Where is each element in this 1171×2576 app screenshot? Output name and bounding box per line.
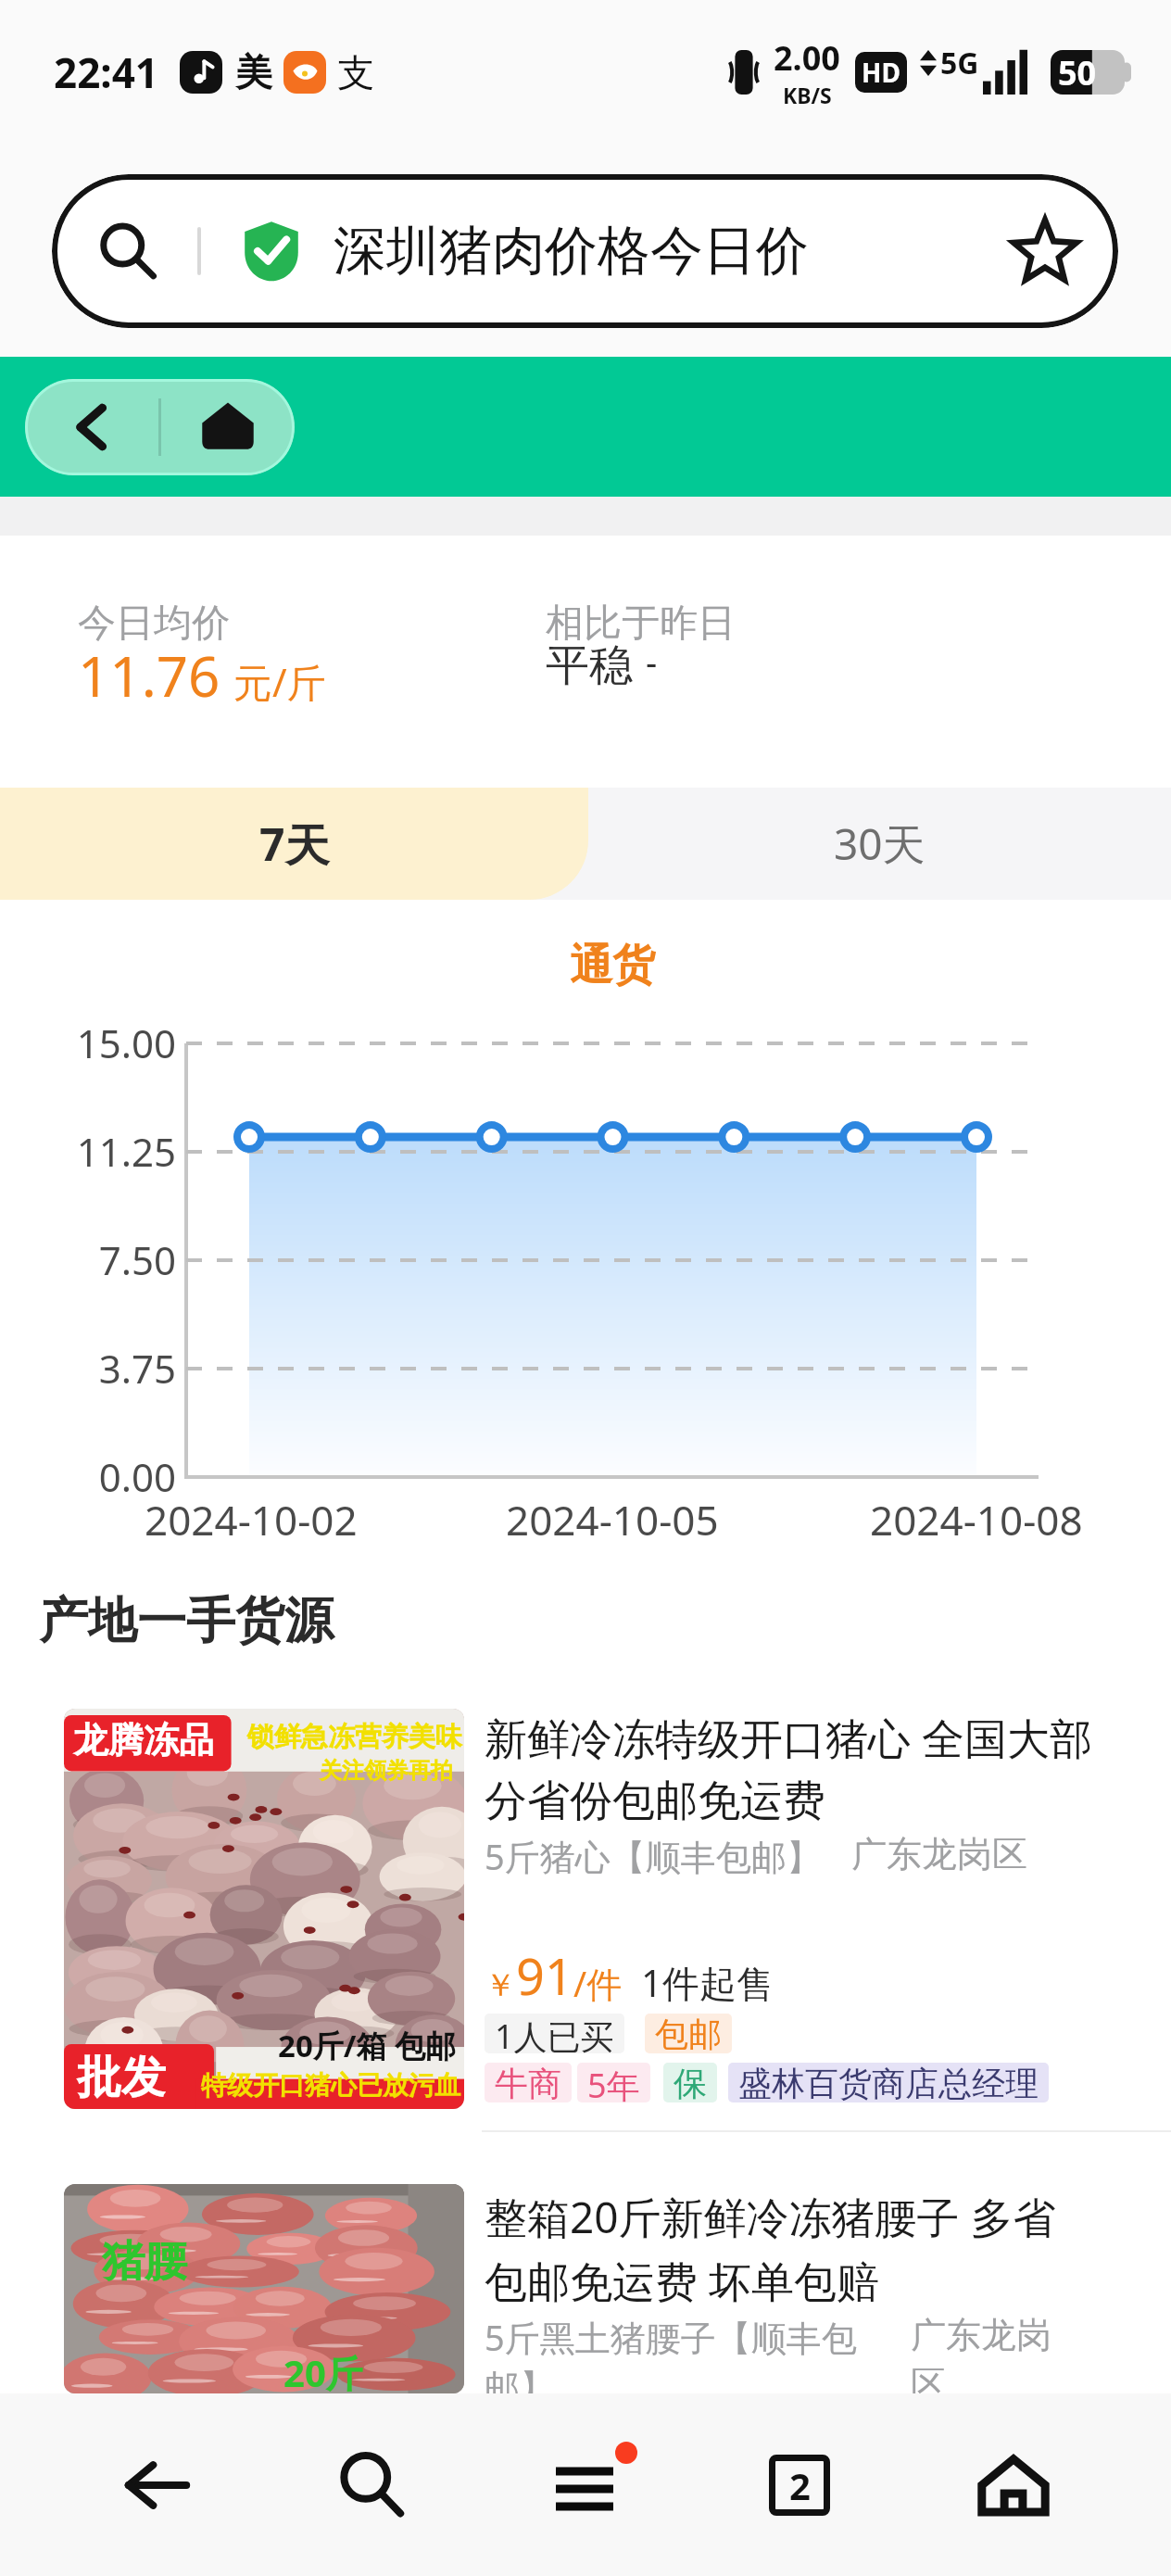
staticText: 5斤猪心【顺丰包邮】 xyxy=(485,1832,822,1880)
staticText: 盛林百货商店总经理 xyxy=(738,2063,1039,2102)
staticText: - xyxy=(646,638,658,686)
button[interactable]: Home xyxy=(161,379,295,475)
staticText: 包邮 xyxy=(655,2014,722,2053)
staticText: 5G xyxy=(940,43,979,83)
button[interactable]: Back xyxy=(51,2393,264,2576)
staticText: 2024-10-08 xyxy=(870,1492,1083,1547)
staticText: KB/S xyxy=(783,81,832,109)
staticText: 11.76 xyxy=(78,638,220,713)
staticText: 平稳 xyxy=(546,638,633,693)
staticText: 5斤黑土猪腰子【顺丰包邮】 xyxy=(485,2313,892,2393)
staticText: 7天 xyxy=(259,814,330,875)
staticText: 22:41 xyxy=(54,44,159,100)
staticText: 牛商 xyxy=(495,2063,561,2102)
staticText: /件 xyxy=(573,1959,623,2007)
button[interactable]: 30天 xyxy=(588,788,1171,900)
button[interactable]: Search xyxy=(52,174,1118,328)
staticText: 关注领券再拍 xyxy=(320,1757,453,1785)
staticText: 2 xyxy=(789,2460,811,2510)
staticText: 深圳猪肉价格今日价 xyxy=(334,218,809,284)
staticText: 91 xyxy=(516,1941,573,2010)
button[interactable]: 龙腾冻品 xyxy=(0,1709,1171,2130)
staticText: 2024-10-02 xyxy=(145,1492,358,1547)
button[interactable]: 猪腰 xyxy=(0,2132,1171,2393)
staticText: 20斤 xyxy=(283,2347,363,2393)
staticText: 0.00 xyxy=(0,1450,176,1503)
staticText: 11.25 xyxy=(0,1125,176,1178)
staticText: 美 xyxy=(235,49,272,95)
staticText: 今日均价 xyxy=(78,600,230,648)
button[interactable]: Menu xyxy=(478,2393,692,2576)
staticText: 通货 xyxy=(570,939,655,992)
button[interactable]: Search xyxy=(264,2393,478,2576)
staticText: 整箱20斤新鲜冷冻猪腰子 多省包邮免运费 坏单包赔 xyxy=(485,2188,1096,2309)
staticText: 广东龙岗区 xyxy=(851,1832,1027,1876)
staticText: 广东龙岗区 xyxy=(911,2313,1064,2393)
button[interactable]: Tabs xyxy=(692,2393,906,2576)
staticText: 元/斤 xyxy=(233,655,326,708)
staticText: ￥ xyxy=(485,1965,516,2005)
staticText: 锁鲜急冻营养美味 xyxy=(247,1720,462,1754)
staticText: 7.50 xyxy=(0,1233,176,1286)
staticText: 保 xyxy=(674,2063,707,2102)
staticText: 猪腰 xyxy=(102,2235,187,2289)
staticText: 新鲜冷冻特级开口猪心 全国大部分省份包邮免运费 xyxy=(485,1709,1134,1828)
staticText: 15.00 xyxy=(0,1017,176,1069)
staticText: 3.75 xyxy=(0,1342,176,1395)
staticText: 支 xyxy=(337,49,374,95)
other: Search xyxy=(98,221,157,281)
button[interactable]: 7天 xyxy=(0,788,588,900)
staticText: 50 xyxy=(1058,50,1097,95)
staticText: 相比于昨日 xyxy=(546,600,736,648)
staticText: 1人已买 xyxy=(495,2014,614,2053)
staticText: 30天 xyxy=(834,814,925,873)
staticText: 龙腾冻品 xyxy=(73,1718,214,1762)
staticText: 特级开口猪心已放污血 xyxy=(201,2069,460,2102)
staticText: 1件起售 xyxy=(641,1957,774,2008)
staticText: 批发 xyxy=(77,2050,166,2105)
staticText: HD xyxy=(862,55,900,90)
button[interactable]: Home xyxy=(906,2393,1120,2576)
other: Favorite xyxy=(1011,217,1079,285)
button[interactable]: Back xyxy=(25,379,158,475)
staticText: 5年 xyxy=(587,2063,640,2102)
staticText: 20斤/箱 包邮 xyxy=(278,2025,457,2066)
staticText: 2024-10-05 xyxy=(506,1492,719,1547)
staticText: 2.00 xyxy=(774,35,840,81)
staticText: 产地一手货源 xyxy=(39,1590,334,1652)
